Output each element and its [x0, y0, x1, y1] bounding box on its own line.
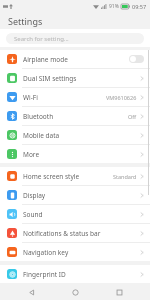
staticText: Standard	[113, 173, 137, 180]
staticText: Home screen style	[23, 172, 113, 181]
button[interactable]: Airplane mode	[0, 50, 150, 68]
button[interactable]: Recents	[106, 284, 132, 300]
staticText: 91%	[109, 3, 119, 10]
button[interactable]: Sound	[0, 205, 150, 223]
button[interactable]: Display	[0, 186, 150, 204]
staticText: Dual SIM settings	[23, 74, 140, 83]
staticText: Fingerprint ID	[23, 270, 140, 279]
button[interactable]: Wi-Fi	[0, 88, 150, 106]
button[interactable]: Search for setting...	[6, 33, 144, 44]
button[interactable]: Airplane mode toggle	[129, 55, 144, 63]
staticText: Mobile data	[23, 131, 140, 140]
staticText: Bluetooth	[23, 112, 128, 121]
button[interactable]: Fingerprint ID	[0, 265, 150, 283]
staticText: Notifications & status bar	[23, 229, 140, 238]
button[interactable]: Mobile data	[0, 126, 150, 144]
staticText: VM9610626	[106, 94, 137, 101]
staticText: Wi-Fi	[23, 93, 106, 102]
staticText: Display	[23, 191, 140, 200]
staticText: Settings	[8, 15, 43, 27]
staticText: Search for setting...	[14, 35, 69, 43]
button[interactable]: Dual SIM settings	[0, 69, 150, 87]
staticText: 09:57	[132, 3, 147, 10]
staticText: Sound	[23, 210, 140, 219]
button[interactable]: Bluetooth	[0, 107, 150, 125]
staticText: More	[23, 150, 140, 159]
staticText: Off	[128, 113, 137, 120]
staticText: Navigation key	[23, 248, 140, 257]
button[interactable]: Home	[62, 284, 88, 300]
button[interactable]: More	[0, 145, 150, 163]
staticText: Airplane mode	[23, 55, 129, 64]
button[interactable]: Navigation key	[0, 243, 150, 261]
button[interactable]: Notifications & status bar	[0, 224, 150, 242]
button[interactable]: Home screen style	[0, 167, 150, 185]
button[interactable]: Back	[18, 284, 44, 300]
